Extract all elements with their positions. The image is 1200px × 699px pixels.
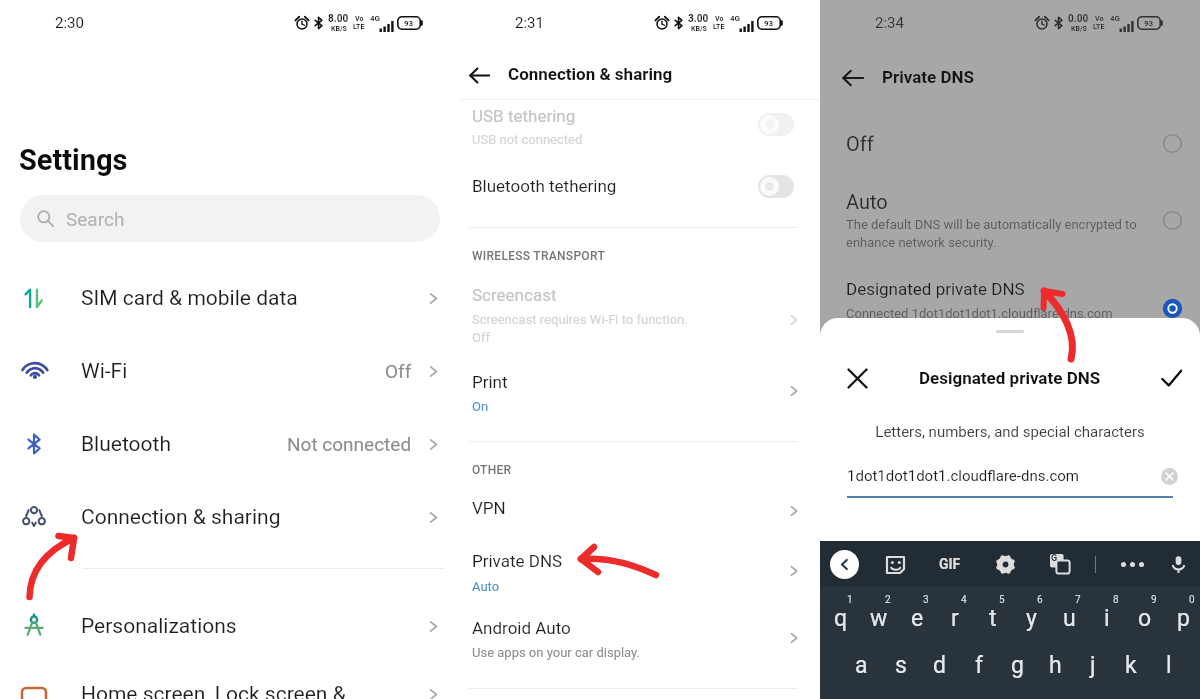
button[interactable] [460, 162, 820, 212]
staticText: s [895, 652, 907, 679]
staticText: Vo [715, 15, 724, 23]
staticText: Print [472, 372, 508, 392]
staticText: 93 [764, 19, 774, 28]
button[interactable]: Toggle [758, 113, 794, 136]
staticText: Bluetooth tethering [472, 176, 617, 196]
staticText: Designated private DNS [919, 368, 1101, 388]
button[interactable]: k [1112, 643, 1150, 699]
staticText: On [472, 399, 489, 414]
staticText: KB/S [691, 25, 707, 33]
button[interactable] [460, 605, 820, 667]
button[interactable]: 5 [974, 587, 1012, 643]
staticText: Wi-Fi [81, 359, 128, 384]
button[interactable] [820, 120, 1200, 168]
staticText: 93 [404, 19, 414, 28]
staticText: p [1177, 605, 1190, 632]
button[interactable]: 2 [860, 587, 898, 643]
staticText: l [1166, 652, 1172, 679]
staticText: 0 [1189, 594, 1195, 606]
button[interactable]: Connection & sharing [0, 495, 460, 539]
button[interactable] [460, 486, 820, 534]
staticText: y [1026, 605, 1037, 632]
staticText: 3.00 [688, 13, 709, 25]
staticText: 2 [885, 594, 891, 606]
staticText: Private DNS [472, 551, 563, 571]
staticText: Bluetooth [81, 432, 171, 457]
button[interactable]: Home screen, Lock screen & [0, 672, 460, 699]
button[interactable]: Wi-Fi [0, 349, 460, 393]
button[interactable]: 9 [1126, 587, 1164, 643]
staticText: t [989, 605, 997, 632]
button[interactable]: Bluetooth [0, 422, 460, 466]
button[interactable]: a [842, 643, 881, 699]
button[interactable]: 7 [1050, 587, 1088, 643]
button[interactable]: d [920, 643, 959, 699]
staticText: Off [846, 132, 874, 155]
button[interactable]: Cancel [839, 360, 875, 396]
button[interactable]: SIM card & mobile data [0, 276, 460, 320]
button[interactable]: Back [835, 60, 871, 96]
button[interactable] [460, 360, 820, 420]
staticText: Use apps on your car display. [472, 645, 640, 660]
button[interactable]: 3 [898, 587, 936, 643]
staticText: Private DNS [882, 67, 974, 87]
staticText: w [870, 605, 888, 632]
staticText: 0.00 [1068, 13, 1089, 25]
button[interactable]: Translate [1050, 554, 1070, 574]
button[interactable]: Toggle [758, 175, 794, 198]
staticText: Personalizations [81, 614, 237, 639]
button[interactable] [460, 270, 820, 350]
button[interactable]: 1 [822, 587, 860, 643]
staticText: OTHER [472, 463, 512, 477]
staticText: Android Auto [472, 618, 571, 638]
button[interactable] [460, 100, 820, 162]
button[interactable]: j [1074, 643, 1112, 699]
staticText: 3 [923, 594, 929, 606]
staticText: i [1104, 605, 1110, 632]
staticText: Search [66, 208, 125, 230]
button[interactable]: More options [1121, 562, 1144, 567]
button[interactable]: GIF [939, 556, 961, 572]
staticText: k [1125, 652, 1137, 679]
staticText: LTE [1093, 23, 1105, 31]
staticText: 4G [730, 14, 741, 23]
button[interactable]: Back [461, 57, 497, 93]
button[interactable]: f [959, 643, 998, 699]
button[interactable]: 6 [1012, 587, 1050, 643]
staticText: Screencast [472, 285, 557, 305]
button[interactable]: Close keyboard toolbar [830, 550, 859, 579]
button[interactable]: Confirm [1153, 360, 1189, 396]
staticText: f [975, 652, 983, 679]
button[interactable]: s [881, 643, 920, 699]
button[interactable] [820, 180, 1200, 254]
staticText: Connection & sharing [81, 505, 281, 530]
staticText: Letters, numbers, and special characters [820, 423, 1200, 441]
button[interactable]: Personalizations [0, 604, 460, 648]
button[interactable]: Search [20, 195, 440, 242]
staticText: VPN [472, 498, 506, 518]
button[interactable]: 8 [1088, 587, 1126, 643]
button[interactable] [820, 268, 1200, 318]
button[interactable]: Stickers [885, 554, 906, 575]
staticText: r [951, 605, 959, 632]
staticText: Home screen, Lock screen & [81, 682, 346, 699]
button[interactable]: 0 [1164, 587, 1200, 643]
staticText: Off [472, 330, 490, 345]
staticText: j [1090, 652, 1096, 679]
staticText: Connected 1dot1dot1dot1.cloudflare-dns.c… [846, 306, 1113, 321]
button[interactable]: g [998, 643, 1036, 699]
staticText: q [834, 605, 848, 632]
button[interactable] [460, 540, 820, 600]
staticText: LTE [353, 23, 365, 31]
button[interactable]: h [1036, 643, 1074, 699]
staticText: Vo [1095, 15, 1104, 23]
button[interactable]: Voice input [1169, 555, 1188, 574]
staticText: 93 [1144, 19, 1154, 28]
staticText: e [911, 605, 924, 632]
button[interactable]: Settings [996, 555, 1015, 574]
staticText: Auto [846, 190, 888, 213]
button[interactable]: 4 [936, 587, 974, 643]
staticText: WIRELESS TRANSPORT [472, 249, 606, 263]
button[interactable]: Clear text [1161, 468, 1178, 485]
button[interactable]: l [1150, 643, 1188, 699]
